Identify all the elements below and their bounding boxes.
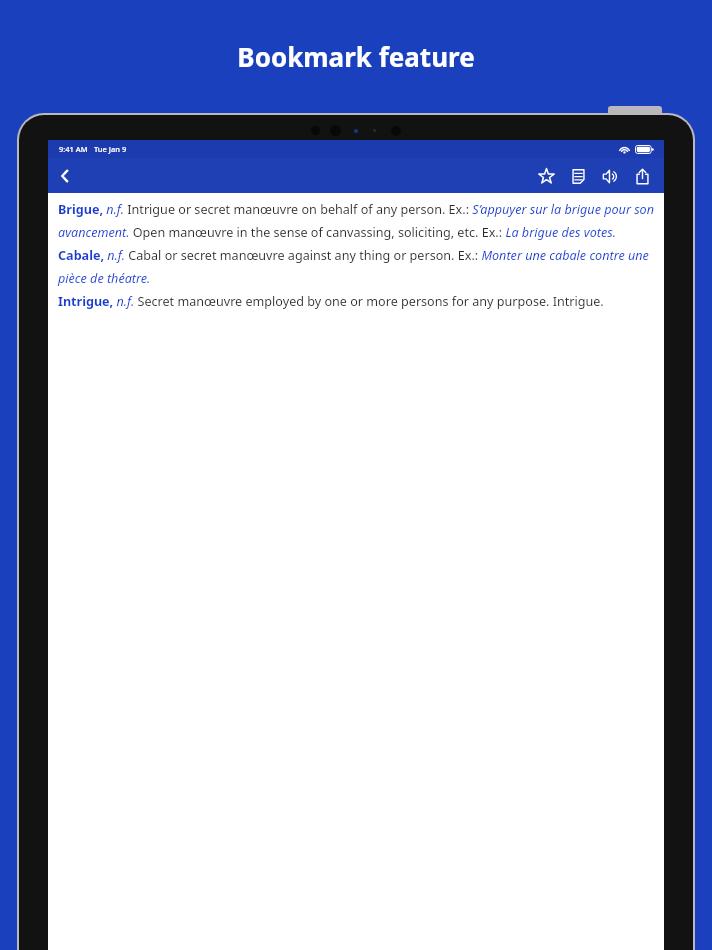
button[interactable]: Notes [562,160,594,192]
button[interactable]: Bookmark [530,160,562,192]
button[interactable]: Share [626,160,658,192]
staticText: Tue Jan 9 [94,144,127,154]
staticText: Brigue, n.f. Intrigue or secret manœuvre… [58,201,654,310]
staticText: Bookmark feature [237,39,475,74]
button[interactable]: Speak aloud [594,160,626,192]
button[interactable]: Back [48,159,82,193]
staticText: 9:41 AM [59,144,88,154]
